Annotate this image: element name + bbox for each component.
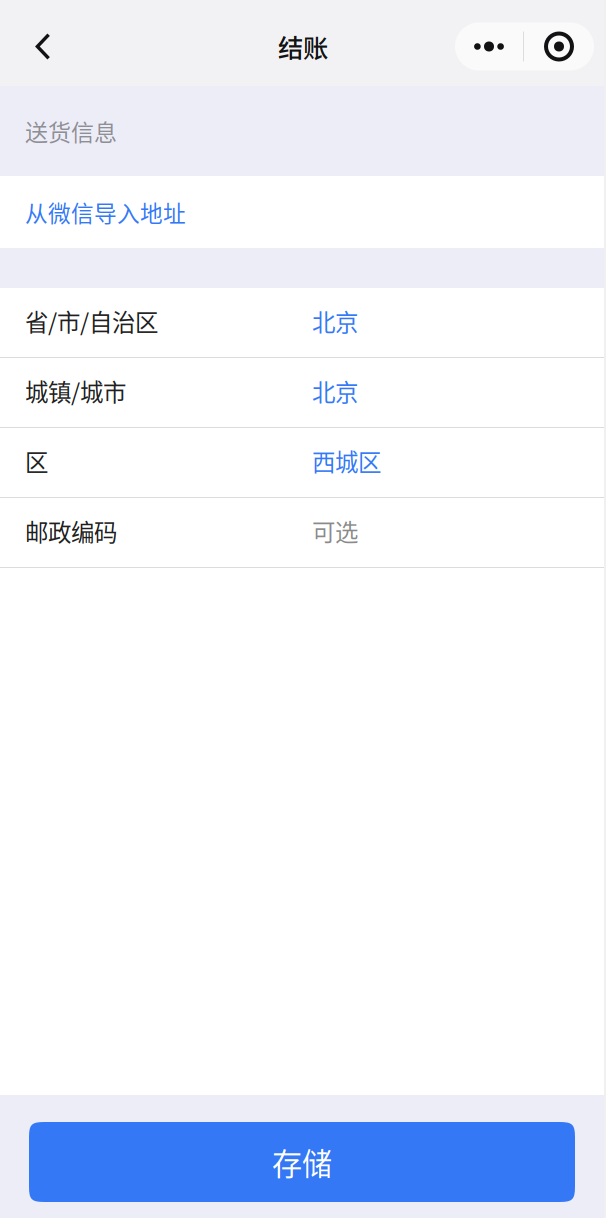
button[interactable]: 省/市/自治区 — [0, 288, 606, 358]
staticText: 送货信息 — [25, 114, 117, 148]
button[interactable]: 城镇/城市 — [0, 358, 606, 428]
staticText: 结账 — [278, 28, 328, 65]
button[interactable]: 邮政编码 — [0, 498, 606, 568]
button[interactable]: Close mini program — [524, 22, 594, 70]
staticText: 北京 — [312, 304, 358, 338]
staticText: 省/市/自治区 — [25, 304, 158, 338]
button[interactable]: More options — [455, 22, 523, 70]
staticText: 存储 — [272, 1140, 332, 1184]
staticText: 城镇/城市 — [25, 374, 126, 408]
button[interactable]: 区 — [0, 428, 606, 498]
staticText: 可选 — [312, 514, 358, 548]
staticText: 西城区 — [312, 444, 381, 478]
staticText: 区 — [25, 444, 48, 478]
button[interactable]: 存储 — [29, 1122, 575, 1202]
button[interactable]: Back — [6, 21, 72, 71]
staticText: 从微信导入地址 — [25, 196, 186, 228]
staticText: 北京 — [312, 374, 358, 408]
staticText: 邮政编码 — [25, 514, 117, 548]
button[interactable]: 从微信导入地址 — [0, 176, 606, 248]
